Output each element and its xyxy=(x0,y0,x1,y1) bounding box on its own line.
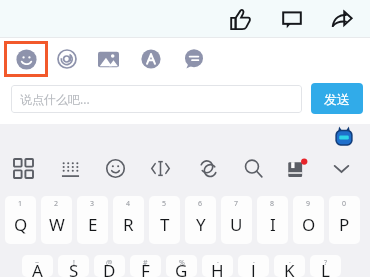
button[interactable]: 2 xyxy=(41,196,72,244)
button[interactable]: Search xyxy=(236,149,270,187)
button[interactable]: 7 xyxy=(221,196,252,244)
staticText: 0 xyxy=(342,199,347,209)
staticText: U xyxy=(230,213,243,236)
button[interactable]: 9 xyxy=(293,196,324,244)
staticText: ~ xyxy=(35,258,40,268)
button[interactable]: Quick reply xyxy=(177,38,211,80)
staticText: T xyxy=(160,213,170,236)
button[interactable]: Notebook xyxy=(280,149,314,187)
button[interactable]: Comment xyxy=(272,0,312,38)
staticText: 2 xyxy=(54,199,59,209)
staticText: 9 xyxy=(306,199,311,209)
button[interactable]: · xyxy=(238,255,269,277)
button[interactable]: Keyboard xyxy=(53,149,87,187)
staticText: W xyxy=(49,213,65,236)
staticText: J xyxy=(251,259,256,277)
staticText: K xyxy=(284,259,295,277)
button[interactable]: Cursor xyxy=(143,149,177,187)
button[interactable]: % xyxy=(166,255,197,277)
button[interactable]: Emoji xyxy=(98,149,132,187)
button[interactable]: 说点什么吧... xyxy=(11,85,302,113)
button[interactable]: Mention xyxy=(50,38,84,80)
staticText: E xyxy=(88,213,98,236)
staticText: G xyxy=(175,259,188,277)
button[interactable]: Like xyxy=(220,0,260,38)
staticText: F xyxy=(141,259,150,277)
staticText: L xyxy=(321,259,330,277)
staticText: Q xyxy=(14,213,28,236)
button[interactable]: · xyxy=(274,255,305,277)
staticText: I xyxy=(270,213,276,236)
staticText: 8 xyxy=(270,199,275,209)
staticText: 7 xyxy=(234,199,239,209)
staticText: # xyxy=(143,258,148,268)
button[interactable]: 3 xyxy=(77,196,108,244)
staticText: · xyxy=(253,258,255,268)
staticText: @ xyxy=(106,258,113,268)
staticText: 5 xyxy=(162,199,167,209)
staticText: A xyxy=(32,259,43,277)
staticText: S xyxy=(69,259,79,277)
button[interactable]: 5 xyxy=(149,196,180,244)
button[interactable]: 发送 xyxy=(311,83,363,114)
staticText: ? xyxy=(324,258,328,268)
button[interactable]: # xyxy=(130,255,161,277)
button[interactable]: ? xyxy=(310,255,341,277)
button[interactable]: ! xyxy=(58,255,89,277)
staticText: · xyxy=(289,258,291,268)
staticText: ! xyxy=(73,258,75,268)
staticText: 1 xyxy=(18,199,23,209)
button[interactable]: ~ xyxy=(22,255,53,277)
staticText: 发送 xyxy=(324,91,350,107)
staticText: R xyxy=(123,213,134,236)
button[interactable]: Emoji xyxy=(4,41,48,77)
staticText: O xyxy=(302,213,316,236)
button[interactable]: · xyxy=(202,255,233,277)
staticText: 6 xyxy=(198,199,203,209)
button[interactable]: 1 xyxy=(5,196,36,244)
button[interactable]: 6 xyxy=(185,196,216,244)
button[interactable]: 8 xyxy=(257,196,288,244)
staticText: 3 xyxy=(90,199,95,209)
button[interactable]: 4 xyxy=(113,196,144,244)
button[interactable]: Attachment xyxy=(191,149,225,187)
button[interactable]: Text style xyxy=(134,38,168,80)
button[interactable]: Image xyxy=(91,38,125,80)
button[interactable]: Apps xyxy=(6,149,40,187)
staticText: D xyxy=(103,259,116,277)
staticText: Y xyxy=(196,213,206,236)
staticText: 4 xyxy=(126,199,131,209)
button[interactable]: Share xyxy=(322,0,362,38)
staticText: · xyxy=(217,258,219,268)
button[interactable]: Assistant xyxy=(330,125,358,149)
staticText: H xyxy=(211,259,224,277)
staticText: % xyxy=(179,258,185,268)
staticText: 说点什么吧... xyxy=(20,91,90,107)
button[interactable]: Hide keyboard xyxy=(324,149,358,187)
staticText: P xyxy=(339,213,350,236)
button[interactable]: @ xyxy=(94,255,125,277)
button[interactable]: 0 xyxy=(329,196,360,244)
